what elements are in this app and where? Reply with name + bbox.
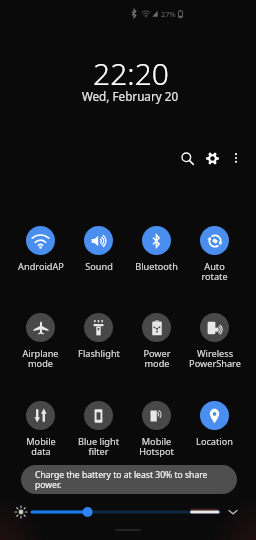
staticText: Wireless PowerShare xyxy=(189,347,241,370)
button[interactable]: Settings xyxy=(201,147,223,169)
staticText: AndroidAP xyxy=(18,260,64,273)
button[interactable]: Brightness xyxy=(13,504,29,520)
staticText: Location xyxy=(196,435,233,448)
staticText: Blue light filter xyxy=(78,435,119,458)
staticText: Flashlight xyxy=(78,347,120,360)
staticText: 22:20 xyxy=(3,53,256,94)
button[interactable]: More options xyxy=(225,147,247,169)
button[interactable]: Flashlight xyxy=(69,313,128,360)
staticText: 27% xyxy=(161,9,176,19)
button[interactable]: Charge the battery to at least 30% to sh… xyxy=(21,465,237,494)
button[interactable]: Mobile Hotspot xyxy=(127,401,186,458)
staticText: Sound xyxy=(85,260,113,273)
staticText: Bluetooth xyxy=(135,260,178,273)
staticText: Mobile Hotspot xyxy=(139,435,174,458)
staticText: Wed, February 20 xyxy=(2,88,256,104)
staticText: Auto rotate xyxy=(201,260,228,283)
button[interactable]: Power mode xyxy=(127,313,186,370)
button[interactable]: Bluetooth xyxy=(127,226,186,273)
staticText: Power mode xyxy=(143,347,171,370)
button[interactable]: Sound xyxy=(69,226,128,273)
button[interactable] xyxy=(30,504,222,520)
button[interactable]: Expand brightness settings xyxy=(225,504,241,520)
button[interactable]: Mobile data xyxy=(11,401,70,458)
button[interactable]: Auto rotate xyxy=(185,226,244,283)
button[interactable]: AndroidAP xyxy=(11,226,70,273)
button[interactable]: Blue light filter xyxy=(69,401,128,458)
staticText: Charge the battery to at least 30% to sh… xyxy=(35,469,227,491)
staticText: Airplane mode xyxy=(22,347,59,370)
staticText: Mobile data xyxy=(26,435,56,458)
button[interactable]: Airplane mode xyxy=(11,313,70,370)
button[interactable]: Wireless PowerShare xyxy=(185,313,244,370)
button[interactable]: Search xyxy=(176,147,198,169)
button[interactable]: Location xyxy=(185,401,244,448)
